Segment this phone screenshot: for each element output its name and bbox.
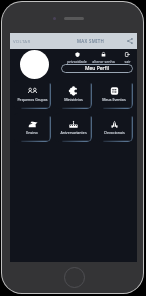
staticText: Ministérios bbox=[64, 97, 83, 102]
button[interactable]: Share bbox=[123, 34, 137, 48]
button[interactable]: Pequenos Grupos bbox=[13, 80, 51, 109]
staticText: Aniversariantes bbox=[60, 130, 87, 135]
button[interactable]: Aniversariantes bbox=[54, 113, 92, 142]
staticText: Devocionais bbox=[104, 130, 125, 135]
staticText: MAX SMITH bbox=[77, 38, 105, 44]
staticText: VOLTAR bbox=[13, 38, 31, 44]
button[interactable]: Meus Eventos bbox=[95, 80, 133, 109]
staticText: sair bbox=[124, 59, 131, 64]
staticText: Ensino bbox=[26, 130, 38, 135]
button[interactable]: Meu Perfil bbox=[61, 64, 133, 73]
staticText: Meu Perfil bbox=[85, 65, 109, 72]
button[interactable]: sair bbox=[114, 52, 141, 64]
staticText: privacidade bbox=[67, 59, 87, 64]
button[interactable]: Devocionais bbox=[95, 113, 133, 142]
staticText: Meus Eventos bbox=[102, 97, 126, 102]
staticText: alterar senha bbox=[92, 59, 115, 64]
staticText: Pequenos Grupos bbox=[17, 97, 48, 102]
button[interactable]: Profile photo bbox=[20, 50, 49, 79]
button[interactable]: VOLTAR bbox=[10, 34, 34, 48]
button[interactable]: Ensino bbox=[13, 113, 51, 142]
button[interactable]: Ministérios bbox=[54, 80, 92, 109]
button[interactable]: privacidade bbox=[63, 52, 91, 64]
button[interactable]: alterar senha bbox=[89, 52, 117, 64]
